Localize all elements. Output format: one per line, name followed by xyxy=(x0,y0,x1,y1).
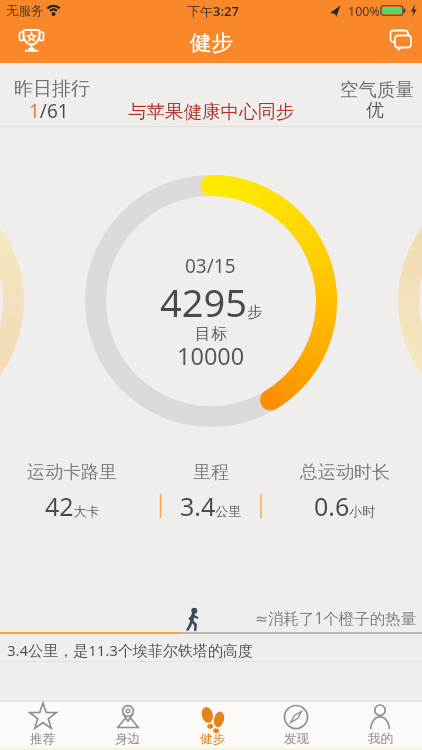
staticText: 03/15 xyxy=(185,253,236,279)
staticText: 空气质量 xyxy=(340,78,414,101)
staticText: 10000 xyxy=(177,340,245,372)
button[interactable] xyxy=(4,68,100,122)
button[interactable]: 推荐 xyxy=(0,702,85,750)
staticText: 下午3:27 xyxy=(187,2,239,20)
button[interactable]: 健步 xyxy=(170,702,254,750)
staticText: 身边 xyxy=(115,731,140,747)
staticText: 推荐 xyxy=(30,731,55,747)
staticText: ≈消耗了1个橙子的热量 xyxy=(255,607,417,628)
button[interactable] xyxy=(14,26,48,60)
button[interactable]: 身边 xyxy=(85,702,170,750)
staticText: 运动卡路里 xyxy=(27,461,117,483)
button[interactable] xyxy=(326,68,422,122)
staticText: 目标 xyxy=(195,324,227,344)
staticText: 总运动时长 xyxy=(300,461,390,483)
staticText: 100% xyxy=(348,3,380,20)
staticText: 3.4公里，是11.3个埃菲尔铁塔的高度 xyxy=(7,640,253,660)
button[interactable]: 发现 xyxy=(254,702,338,750)
staticText: 1/61 xyxy=(29,98,69,124)
staticText: 4295步 xyxy=(160,276,262,328)
button[interactable]: 我的 xyxy=(338,702,422,750)
staticText: 里程 xyxy=(193,461,229,483)
staticText: 健步 xyxy=(200,731,225,747)
staticText: 与苹果健康中心同步 xyxy=(128,100,295,123)
staticText: 优 xyxy=(366,99,384,122)
button[interactable]: 与苹果健康中心同步 xyxy=(120,98,302,124)
staticText: 我的 xyxy=(368,731,393,747)
staticText: 健步 xyxy=(190,29,233,56)
staticText: 3.4公里 xyxy=(180,489,242,523)
staticText: 0.6小时 xyxy=(314,489,376,523)
staticText: 昨日排行 xyxy=(14,77,90,101)
staticText: 42大卡 xyxy=(45,489,100,523)
staticText: 发现 xyxy=(284,731,309,747)
staticText: 无服务 xyxy=(6,3,44,19)
button[interactable] xyxy=(381,25,415,59)
